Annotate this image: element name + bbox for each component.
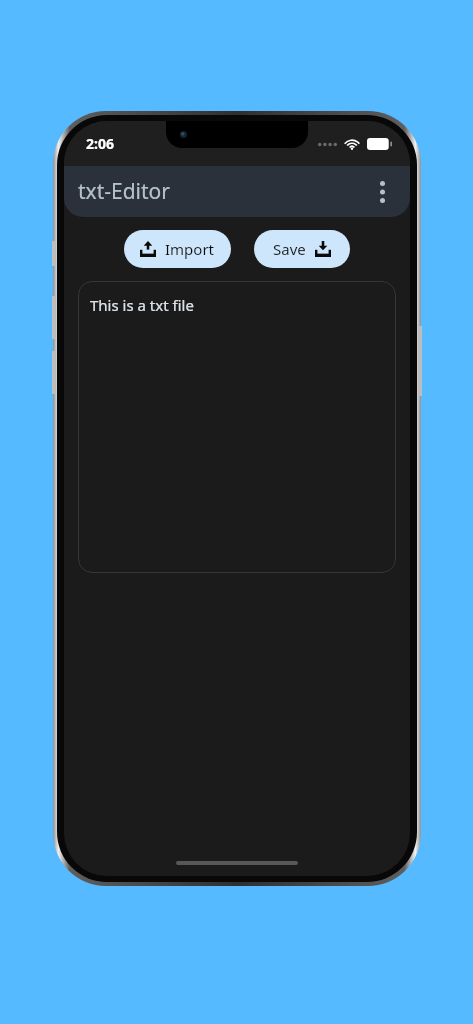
- button[interactable]: Save: [254, 230, 350, 268]
- button[interactable]: More options: [362, 172, 402, 212]
- staticText: Import: [165, 239, 215, 259]
- staticText: This is a txt file: [90, 295, 194, 315]
- staticText: Save: [273, 239, 306, 259]
- staticText: txt-Editor: [78, 177, 171, 206]
- staticText: 2:06: [86, 134, 114, 153]
- button[interactable]: Import: [124, 230, 231, 268]
- button[interactable]: This is a txt file: [78, 281, 396, 573]
